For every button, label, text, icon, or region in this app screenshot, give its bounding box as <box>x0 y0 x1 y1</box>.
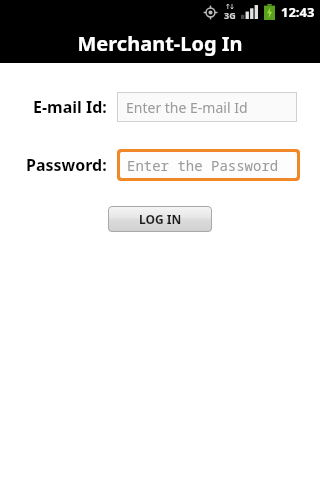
staticText: 3G <box>224 9 236 21</box>
staticText: Enter the E-mail Id <box>126 98 248 117</box>
staticText: Password: <box>26 154 107 176</box>
staticText: 12:43 <box>281 3 315 21</box>
staticText: Enter the Password <box>127 156 279 175</box>
staticText: E-mail Id: <box>33 96 107 118</box>
button[interactable]: LOG IN <box>108 206 212 232</box>
button[interactable]: Enter the E-mail Id <box>117 92 297 122</box>
staticText: LOG IN <box>139 211 182 227</box>
staticText: Merchant-Log In <box>77 30 243 57</box>
button[interactable]: Enter the Password <box>120 152 297 178</box>
